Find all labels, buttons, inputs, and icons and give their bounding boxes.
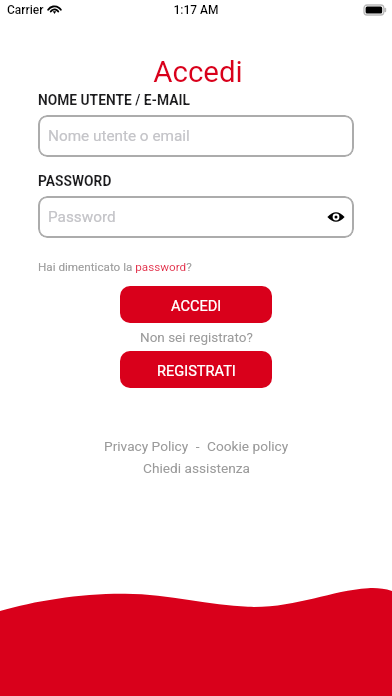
button[interactable]: Nome utente o email bbox=[38, 115, 354, 157]
button[interactable]: Hai dimenticato la password? bbox=[38, 260, 192, 274]
staticText: ACCEDI bbox=[171, 297, 222, 314]
button[interactable]: Password bbox=[38, 196, 354, 238]
other: Wi-Fi bbox=[47, 4, 62, 14]
button[interactable]: Privacy Policy bbox=[104, 438, 189, 454]
staticText: Hai dimenticato la password? bbox=[38, 260, 192, 274]
button[interactable]: REGISTRATI bbox=[120, 351, 272, 388]
staticText: NOME UTENTE / E-MAIL bbox=[38, 92, 190, 108]
button[interactable]: Mostra password bbox=[321, 202, 351, 232]
staticText: REGISTRATI bbox=[157, 362, 236, 379]
staticText: 1:17 AM bbox=[0, 3, 392, 17]
staticText: Privacy Policy bbox=[104, 438, 189, 454]
staticText: PASSWORD bbox=[38, 173, 112, 189]
other: Battery full bbox=[364, 5, 386, 15]
staticText: Non sei registrato? bbox=[140, 329, 253, 345]
button[interactable]: Chiedi assistenza bbox=[143, 460, 250, 476]
staticText: Chiedi assistenza bbox=[143, 460, 250, 476]
staticText: Nome utente o email bbox=[48, 127, 190, 145]
button[interactable]: ACCEDI bbox=[120, 286, 272, 323]
button[interactable]: Cookie policy bbox=[207, 438, 289, 454]
staticText: - bbox=[189, 438, 207, 454]
staticText: Accedi bbox=[2, 55, 392, 90]
staticText: Cookie policy bbox=[207, 438, 289, 454]
staticText: Password bbox=[48, 208, 116, 226]
button[interactable]: Non sei registrato? bbox=[140, 329, 253, 345]
staticText: Carrier bbox=[7, 3, 44, 17]
